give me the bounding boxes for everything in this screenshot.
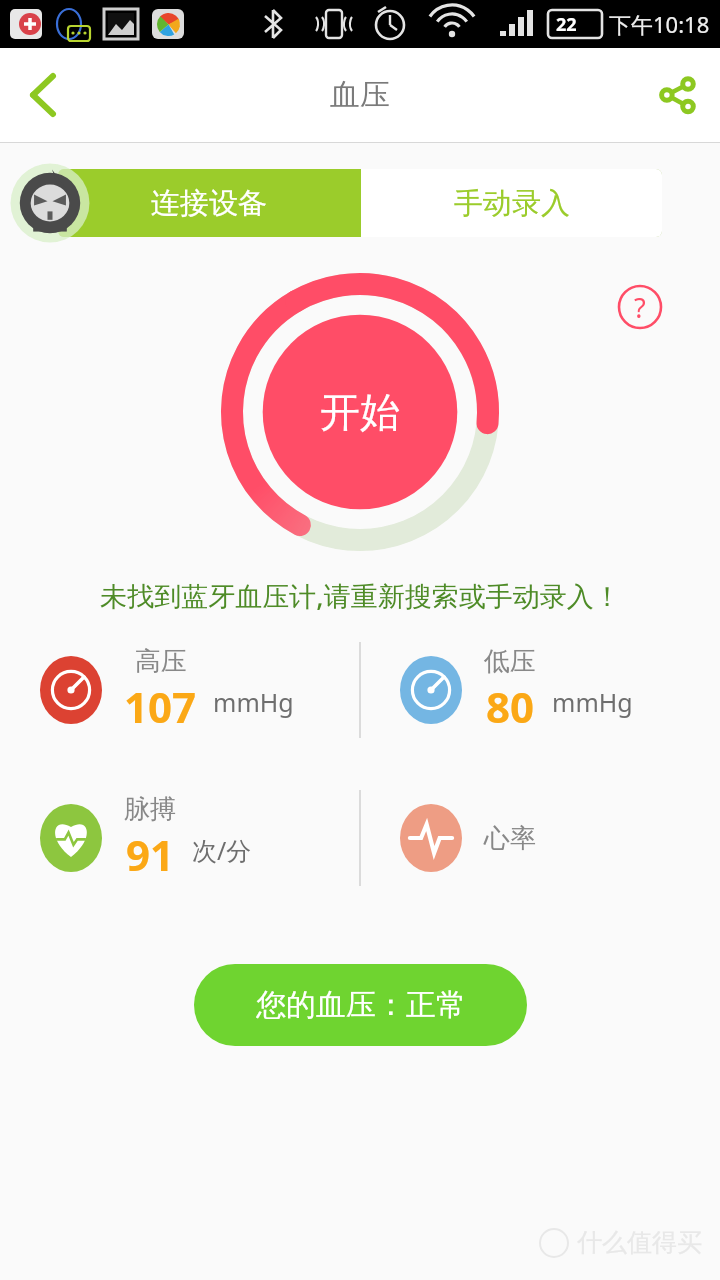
staticText: 91: [126, 826, 175, 883]
button[interactable]: 您的血压：正常: [194, 964, 527, 1046]
staticText: 107: [124, 678, 197, 735]
staticText: 心率: [484, 822, 536, 855]
staticText: 80: [486, 678, 535, 735]
staticText: 什么值得买: [577, 1227, 702, 1258]
staticText: 血压: [330, 76, 390, 114]
staticText: 下午10:18: [609, 9, 710, 39]
staticText: 连接设备: [151, 185, 267, 222]
button[interactable]: Back: [0, 52, 86, 138]
button[interactable]: Help: [614, 281, 666, 333]
staticText: 手动录入: [454, 185, 570, 222]
staticText: mmHg: [213, 685, 294, 719]
button[interactable]: 开始: [219, 271, 501, 553]
button[interactable]: Share: [634, 52, 720, 138]
button[interactable]: 连接设备: [58, 169, 359, 237]
staticText: 开始: [320, 387, 400, 437]
staticText: 低压: [484, 645, 536, 678]
staticText: 高压: [135, 645, 187, 678]
staticText: 脉搏: [124, 793, 176, 826]
staticText: 次/分: [192, 833, 252, 867]
staticText: 22: [556, 12, 577, 37]
staticText: 您的血压：正常: [256, 986, 466, 1024]
staticText: 未找到蓝牙血压计,请重新搜索或手动录入！: [100, 577, 621, 614]
button[interactable]: 手动录入: [361, 169, 662, 237]
staticText: ?: [634, 289, 646, 326]
staticText: mmHg: [552, 685, 633, 719]
